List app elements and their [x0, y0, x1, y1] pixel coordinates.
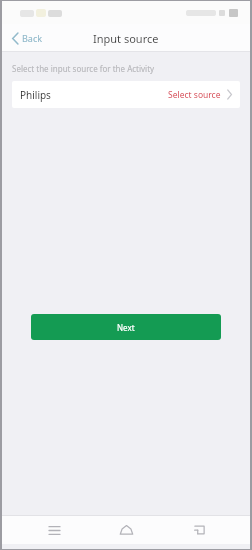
staticText: Select the input source for the Activity [12, 63, 155, 74]
button[interactable]: Back [9, 29, 46, 47]
staticText: Select source [168, 89, 221, 101]
button[interactable]: Next [31, 314, 221, 340]
staticText: Philips [20, 88, 51, 102]
button[interactable]: Philips [12, 81, 240, 108]
button[interactable]: Recents [33, 517, 75, 543]
staticText: Back [22, 32, 43, 44]
button[interactable]: Home [105, 517, 147, 543]
staticText: Next [117, 322, 135, 333]
button[interactable]: Back [178, 517, 220, 543]
staticText: Input source [93, 31, 159, 46]
